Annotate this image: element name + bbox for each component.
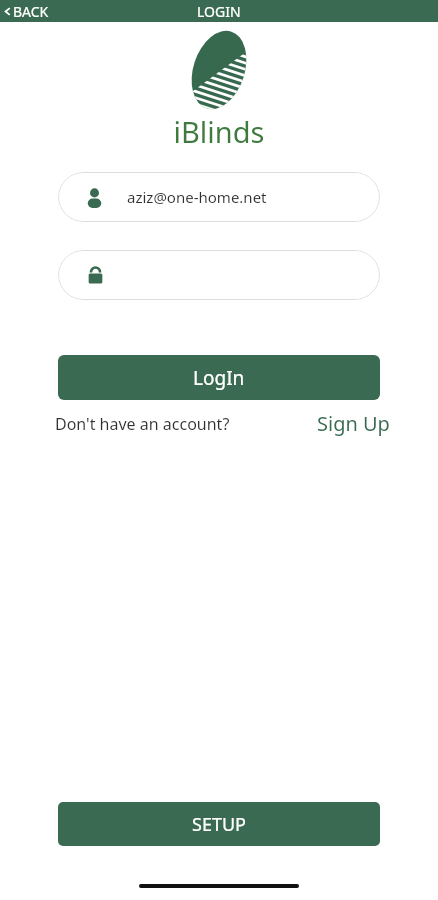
other: Password: [86, 266, 105, 285]
staticText: aziz@one-home.net: [127, 187, 267, 207]
button[interactable]: aziz@one-home.net: [58, 172, 380, 222]
staticText: LogIn: [193, 365, 245, 391]
staticText: LOGIN: [197, 2, 241, 21]
button[interactable]: Sign Up: [317, 410, 390, 437]
staticText: BACK: [13, 2, 49, 21]
button[interactable]: SETUP: [58, 802, 380, 846]
staticText: iBlinds: [0, 112, 438, 151]
button[interactable]: LogIn: [58, 355, 380, 400]
button[interactable]: Back: [0, 2, 55, 21]
staticText: SETUP: [192, 812, 246, 837]
staticText: Sign Up: [317, 410, 390, 437]
staticText: Don't have an account?: [55, 413, 230, 435]
button[interactable]: Password: [58, 250, 380, 300]
other: Back: [3, 7, 12, 16]
